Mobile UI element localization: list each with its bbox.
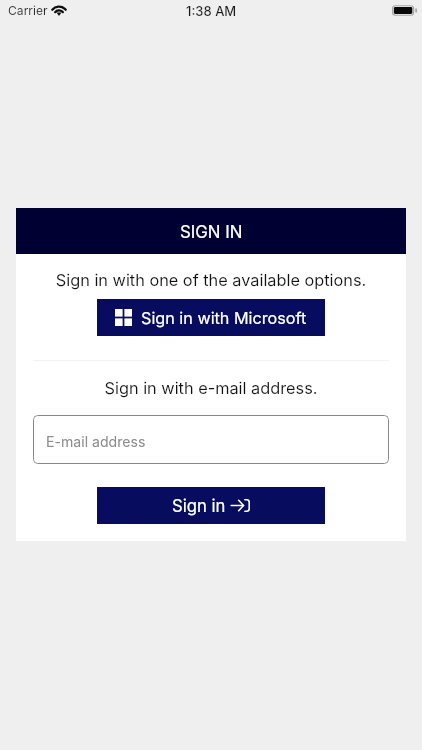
staticText: Sign in with Microsoft — [141, 308, 307, 328]
staticText: 1:38 AM — [186, 3, 237, 19]
button[interactable]: Sign in with Microsoft — [97, 299, 325, 336]
staticText: E-mail address — [46, 433, 146, 450]
button[interactable]: E-mail address — [33, 415, 389, 464]
staticText: Sign in with e-mail address. — [16, 378, 406, 398]
staticText: Sign in — [172, 496, 226, 516]
staticText: Carrier — [8, 3, 48, 18]
staticText: Sign in with one of the available option… — [16, 270, 406, 290]
other: Sign in — [231, 499, 250, 512]
staticText: SIGN IN — [180, 222, 243, 242]
button[interactable]: Sign in — [97, 487, 325, 524]
